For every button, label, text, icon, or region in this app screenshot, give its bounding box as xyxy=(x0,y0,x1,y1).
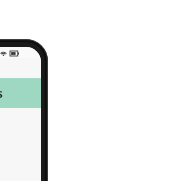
staticText: Notes xyxy=(0,85,3,101)
button[interactable]: Notes xyxy=(0,78,41,108)
button[interactable]: Phone device preview xyxy=(0,39,48,181)
